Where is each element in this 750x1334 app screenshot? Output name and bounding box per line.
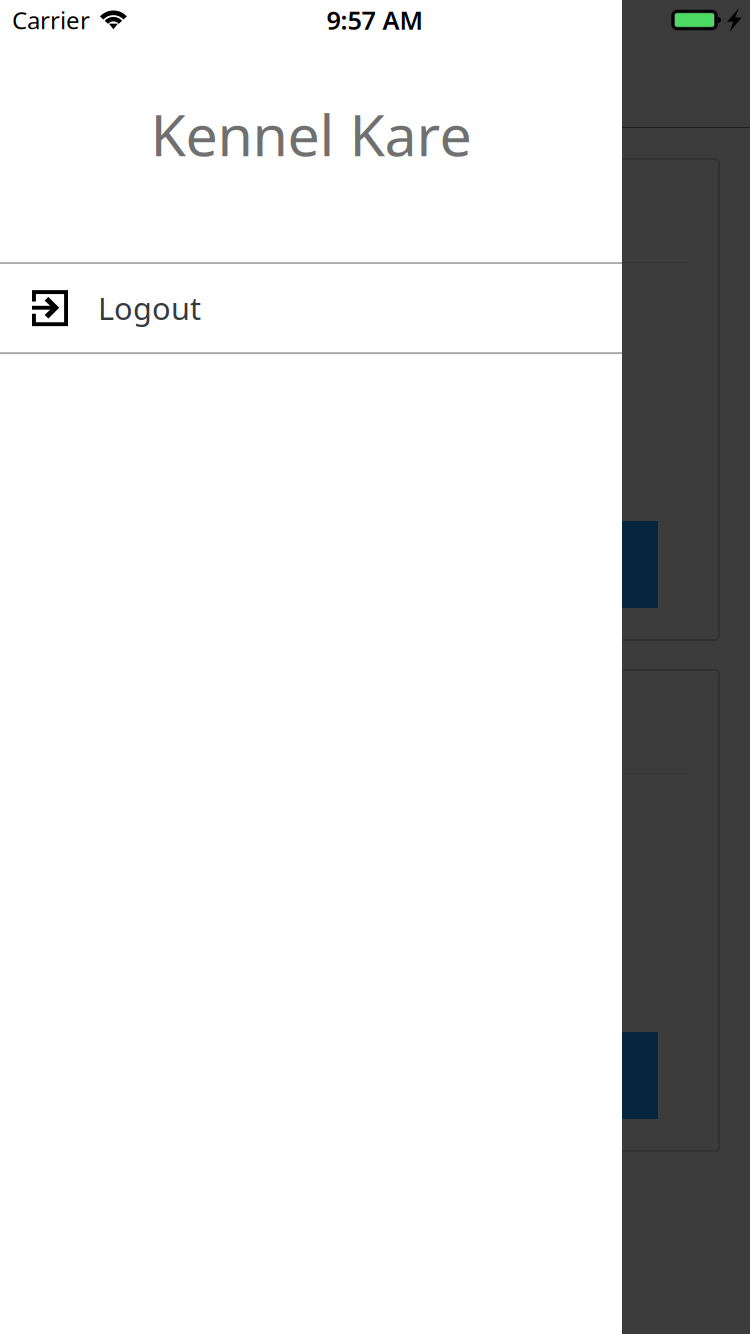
staticText: Kennel Kare [150, 96, 471, 172]
staticText: 9:57 AM [326, 3, 423, 37]
staticText: Logout [98, 288, 201, 328]
staticText: Carrier [12, 4, 90, 36]
button[interactable]: Logout [0, 264, 622, 352]
